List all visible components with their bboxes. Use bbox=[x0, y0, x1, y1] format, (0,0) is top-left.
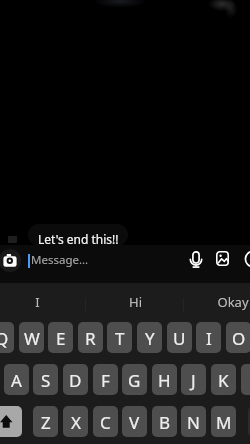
staticText: Message... bbox=[31, 252, 89, 268]
staticText: E bbox=[56, 327, 66, 350]
staticText: S bbox=[41, 369, 51, 392]
staticText: Hi bbox=[129, 293, 142, 311]
button[interactable]: S bbox=[33, 364, 58, 395]
staticText: F bbox=[101, 369, 110, 392]
button[interactable]: O bbox=[226, 322, 250, 353]
staticText: C bbox=[100, 411, 111, 434]
button[interactable]: B bbox=[152, 406, 177, 437]
staticText: Let's end this!! bbox=[38, 231, 119, 247]
staticText: G bbox=[128, 369, 141, 392]
button[interactable]: N bbox=[181, 406, 206, 437]
button[interactable]: G bbox=[122, 364, 147, 395]
staticText: Okay bbox=[217, 293, 249, 311]
button[interactable]: F bbox=[93, 364, 118, 395]
staticText: H bbox=[158, 369, 171, 392]
button[interactable]: Voice message bbox=[188, 251, 204, 268]
button[interactable]: V bbox=[122, 406, 147, 437]
button[interactable]: M bbox=[211, 406, 236, 437]
button[interactable]: J bbox=[181, 364, 206, 395]
button[interactable]: A bbox=[4, 364, 29, 395]
button[interactable]: K bbox=[211, 364, 236, 395]
staticText: I bbox=[35, 293, 40, 311]
button[interactable]: Backspace bbox=[248, 406, 250, 437]
button[interactable] bbox=[28, 224, 128, 246]
button[interactable]: Z bbox=[33, 406, 58, 437]
staticText: K bbox=[218, 369, 229, 392]
button[interactable]: T bbox=[107, 322, 132, 353]
button[interactable]: Shift bbox=[0, 406, 22, 437]
button[interactable]: Stickers bbox=[245, 251, 250, 267]
button[interactable]: X bbox=[63, 406, 88, 437]
button[interactable]: C bbox=[93, 406, 118, 437]
button[interactable]: W bbox=[19, 322, 44, 353]
staticText: J bbox=[191, 369, 196, 392]
staticText: I bbox=[206, 327, 212, 350]
staticText: X bbox=[71, 411, 81, 434]
button[interactable]: L bbox=[241, 364, 250, 395]
staticText: A bbox=[11, 369, 22, 392]
button[interactable]: U bbox=[167, 322, 192, 353]
button[interactable]: I bbox=[196, 322, 221, 353]
button[interactable]: D bbox=[63, 364, 88, 395]
staticText: Q bbox=[0, 327, 9, 350]
staticText: U bbox=[173, 327, 186, 350]
button[interactable]: Hi bbox=[86, 285, 184, 318]
staticText: W bbox=[24, 327, 40, 350]
staticText: N bbox=[187, 411, 200, 434]
button[interactable]: Camera bbox=[0, 249, 21, 272]
staticText: M bbox=[216, 411, 232, 434]
button[interactable]: I bbox=[0, 285, 86, 318]
button[interactable]: Gallery bbox=[216, 251, 229, 266]
button[interactable]: H bbox=[152, 364, 177, 395]
button[interactable]: Q bbox=[0, 322, 14, 353]
button[interactable]: E bbox=[48, 322, 73, 353]
staticText: O bbox=[232, 327, 246, 350]
staticText: Y bbox=[145, 327, 155, 350]
staticText: T bbox=[115, 327, 125, 350]
button[interactable]: Okay bbox=[184, 285, 250, 318]
staticText: D bbox=[69, 369, 82, 392]
staticText: V bbox=[129, 411, 140, 434]
button[interactable]: Y bbox=[137, 322, 162, 353]
staticText: R bbox=[85, 327, 96, 350]
button[interactable]: R bbox=[78, 322, 103, 353]
staticText: Z bbox=[41, 411, 51, 434]
staticText: B bbox=[159, 411, 171, 434]
